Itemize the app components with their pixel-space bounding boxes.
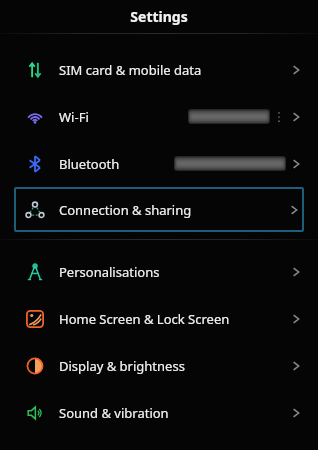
button[interactable]: Sound & vibration [0,389,318,436]
staticText: SIM card & mobile data [59,61,202,79]
other: Open [290,311,302,327]
other: Open [290,109,302,125]
staticText: Connection & sharing [59,201,192,219]
button[interactable]: Connection & sharing [14,187,304,232]
other: Open [290,156,302,172]
other: Open [290,62,302,78]
button[interactable]: Display & brightness [0,342,318,389]
staticText: Personalisations [59,263,160,281]
other: Open [290,405,302,421]
staticText: Home Screen & Lock Screen [59,310,230,328]
staticText: Settings [130,7,188,26]
button[interactable]: Home Screen & Lock Screen [0,295,318,342]
button[interactable]: Personalisations [0,248,318,295]
other: Open [290,358,302,374]
button[interactable]: Bluetooth [0,140,318,187]
staticText: Display & brightness [59,357,185,375]
staticText: Wi-Fi [59,108,89,126]
button[interactable]: SIM card & mobile data [0,46,318,93]
other: Open [288,202,300,218]
staticText: Sound & vibration [59,404,169,422]
staticText: Bluetooth [59,155,120,173]
button[interactable]: Wi-Fi [0,93,318,140]
other: Open [290,264,302,280]
